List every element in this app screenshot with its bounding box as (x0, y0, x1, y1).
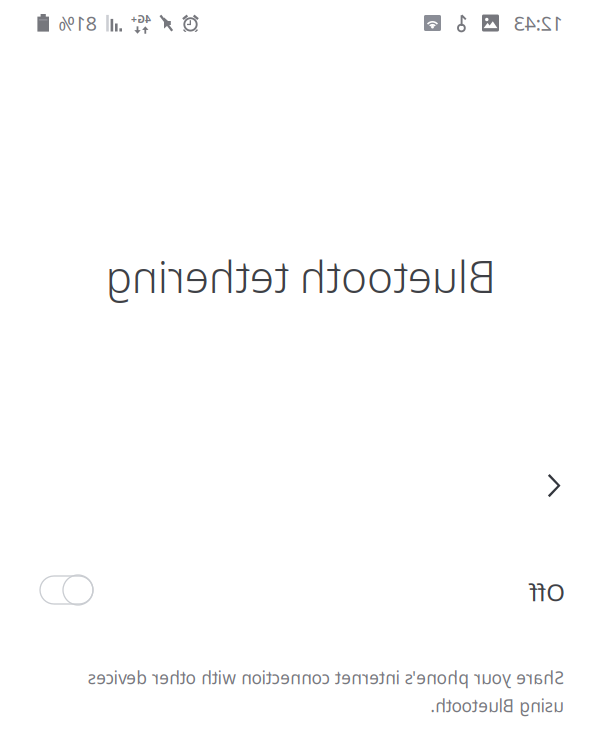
staticText: 81% (503, 10, 542, 36)
staticText: 4G+ (449, 12, 469, 26)
button[interactable]: Off (37, 561, 563, 623)
staticText: 12:43 (37, 10, 86, 36)
staticText: Share your phone's internet connection w… (36, 666, 512, 717)
staticText: Bluetooth tethering (104, 247, 494, 305)
staticText: Off (35, 576, 71, 608)
